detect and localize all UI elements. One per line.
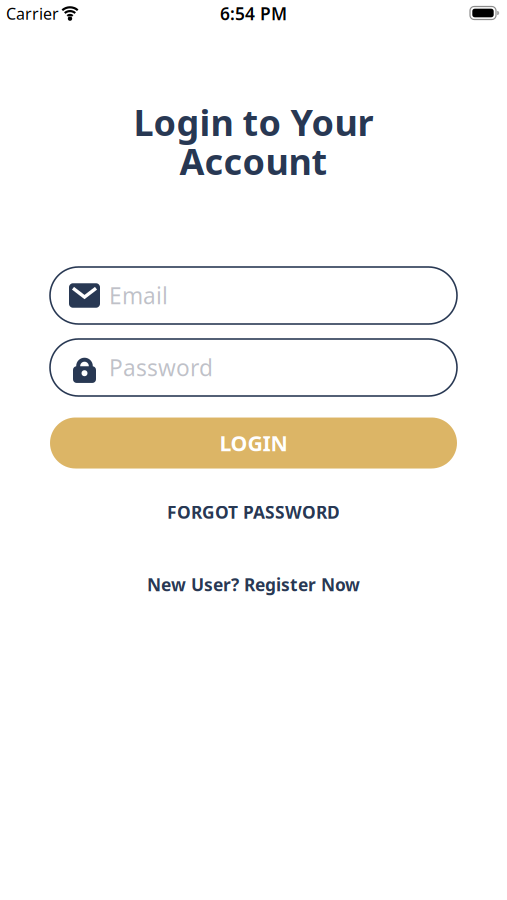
staticText: Account — [179, 137, 327, 185]
staticText: New User? Register Now — [147, 573, 360, 596]
staticText: Email — [109, 280, 168, 310]
staticText: 6:54 PM — [220, 2, 287, 25]
staticText: FORGOT PASSWORD — [167, 500, 340, 523]
button[interactable]: New User? Register Now — [147, 573, 360, 596]
button[interactable]: LOGIN — [50, 417, 457, 468]
button[interactable]: Email — [50, 267, 457, 324]
staticText: Password — [109, 352, 213, 382]
button[interactable]: FORGOT PASSWORD — [167, 500, 340, 523]
staticText: LOGIN — [219, 429, 287, 457]
staticText: Carrier — [6, 3, 59, 24]
button[interactable]: Password — [50, 339, 457, 396]
staticText: Login to Your — [133, 98, 373, 146]
